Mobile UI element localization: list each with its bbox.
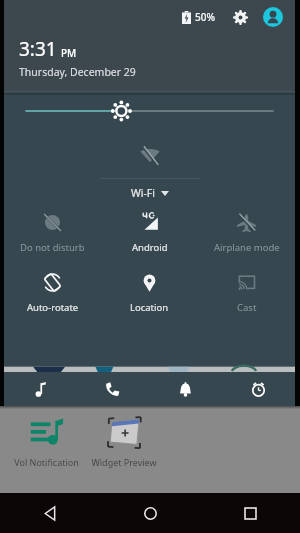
staticText: Wi-Fi <box>131 186 156 200</box>
staticText: 3:31 <box>19 36 57 62</box>
button[interactable]: Phone <box>76 372 149 406</box>
button[interactable]: Back <box>0 493 100 533</box>
button[interactable]: Brightness <box>4 95 295 127</box>
button[interactable]: Music <box>4 372 76 406</box>
button[interactable]: Home <box>100 493 200 533</box>
button[interactable]: Auto-rotate <box>4 270 101 316</box>
button[interactable]: User profile <box>261 5 285 29</box>
button[interactable]: Airplane mode <box>198 210 295 256</box>
button[interactable]: Cast <box>198 270 295 316</box>
staticText: Vol Notification <box>14 456 79 468</box>
button[interactable]: Recent apps <box>200 493 300 533</box>
staticText: Airplane mode <box>214 241 280 254</box>
staticText: Android <box>132 241 168 254</box>
staticText: Thursday, December 29 <box>19 65 136 79</box>
button[interactable]: Alarm <box>222 372 295 406</box>
button[interactable]: Settings <box>227 4 253 30</box>
button[interactable]: Notification <box>149 372 222 406</box>
staticText: PM <box>61 46 77 60</box>
button[interactable]: Location <box>101 270 198 316</box>
staticText: Do not disturb <box>20 241 85 254</box>
staticText: Widget Preview <box>91 456 157 468</box>
staticText: Location <box>130 301 169 314</box>
staticText: Auto-rotate <box>27 301 79 314</box>
button[interactable]: Do not disturb <box>4 210 101 256</box>
staticText: Cast <box>237 301 257 314</box>
button[interactable]: Android <box>101 210 198 256</box>
button[interactable]: Wi-Fi <box>4 127 295 200</box>
button[interactable]: Widget Preview <box>88 414 160 468</box>
staticText: 50% <box>195 10 215 24</box>
button[interactable]: Vol Notification <box>10 414 82 468</box>
